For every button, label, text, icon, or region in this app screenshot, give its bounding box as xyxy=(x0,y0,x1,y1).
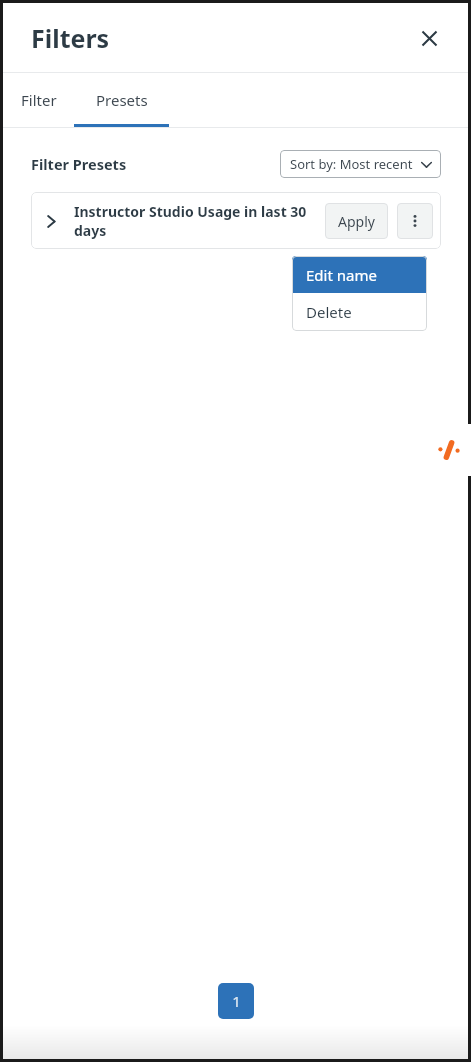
staticText: Edit name xyxy=(306,265,377,285)
button[interactable]: Filter xyxy=(3,73,74,127)
button[interactable]: Sort by: Most recent xyxy=(280,150,441,178)
button[interactable]: Edit name xyxy=(292,256,427,293)
button[interactable]: Instructor Studio Usage in last 30 days xyxy=(74,202,321,240)
staticText: Instructor Studio Usage in last 30 days xyxy=(74,202,321,240)
button[interactable]: Delete xyxy=(292,293,427,331)
button[interactable]: 1 xyxy=(218,983,254,1019)
staticText: 1 xyxy=(232,991,241,1011)
button[interactable]: Expand preset xyxy=(31,201,71,241)
staticText: Presets xyxy=(96,90,148,110)
button[interactable]: Close xyxy=(414,23,444,53)
button[interactable]: Help xyxy=(428,424,471,476)
staticText: Apply xyxy=(338,212,375,231)
staticText: Filter xyxy=(21,90,57,110)
staticText: Filter Presets xyxy=(31,154,127,174)
button[interactable]: Presets xyxy=(74,73,169,127)
button[interactable]: More options xyxy=(397,203,433,239)
staticText: Sort by: Most recent xyxy=(290,155,413,173)
staticText: Filters xyxy=(31,21,110,55)
staticText: Delete xyxy=(306,302,352,322)
button[interactable]: Apply xyxy=(325,203,388,239)
